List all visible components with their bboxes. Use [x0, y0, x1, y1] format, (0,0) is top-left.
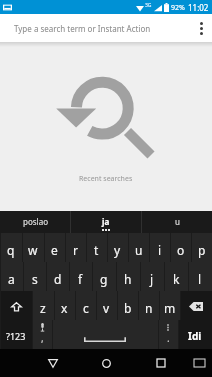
staticText: r: [73, 242, 78, 258]
staticText: n: [145, 300, 153, 316]
staticText: s: [32, 271, 38, 287]
staticText: a: [8, 271, 15, 287]
button[interactable]: k: [164, 262, 188, 291]
button[interactable]: Recent apps: [144, 349, 178, 377]
staticText: l: [198, 271, 202, 287]
staticText: t: [94, 242, 99, 258]
button[interactable]: ja: [71, 211, 141, 233]
staticText: w: [28, 242, 38, 258]
button[interactable]: poslao: [0, 211, 70, 233]
button[interactable]: h: [116, 262, 140, 291]
staticText: Type a search term or Instant Action: [14, 23, 151, 34]
staticText: c: [83, 300, 89, 316]
staticText: q: [7, 242, 15, 258]
button[interactable]: Space: [52, 320, 158, 349]
button[interactable]: e: [44, 233, 65, 262]
button[interactable]: i: [149, 233, 170, 262]
staticText: i: [158, 242, 162, 258]
button[interactable]: Backspace: [180, 291, 212, 320]
button[interactable]: s: [23, 262, 46, 291]
staticText: ?123: [6, 330, 26, 342]
staticText: y: [114, 242, 121, 258]
staticText: Recent searches: [79, 174, 133, 184]
button[interactable]: q: [0, 233, 22, 262]
button[interactable]: b: [117, 291, 138, 320]
button[interactable]: l: [188, 262, 212, 291]
staticText: f: [78, 271, 83, 287]
staticText: b: [124, 300, 132, 316]
button[interactable]: Voice input: [32, 320, 52, 349]
button[interactable]: u: [142, 211, 212, 233]
staticText: d: [54, 271, 62, 287]
staticText: Idi: [188, 329, 202, 343]
button[interactable]: a: [0, 262, 23, 291]
staticText: j: [150, 271, 154, 287]
button[interactable]: Period: [158, 320, 178, 349]
staticText: o: [177, 242, 185, 258]
button[interactable]: w: [22, 233, 44, 262]
button[interactable]: Go: [178, 320, 212, 349]
button[interactable]: j: [140, 262, 164, 291]
button[interactable]: Back: [36, 349, 70, 377]
button[interactable]: v: [96, 291, 117, 320]
staticText: h: [124, 271, 132, 287]
button[interactable]: p: [191, 233, 212, 262]
staticText: k: [173, 271, 180, 287]
staticText: x: [61, 300, 68, 316]
button[interactable]: m: [159, 291, 180, 320]
button[interactable]: n: [138, 291, 159, 320]
button[interactable]: c: [75, 291, 96, 320]
button[interactable]: o: [170, 233, 191, 262]
button[interactable]: r: [65, 233, 86, 262]
button[interactable]: Home: [89, 349, 123, 377]
button[interactable]: d: [46, 262, 69, 291]
button[interactable]: Hide keyboard: [186, 349, 212, 377]
staticText: p: [198, 242, 206, 258]
staticText: 11:02: [188, 2, 209, 13]
button[interactable]: y: [107, 233, 128, 262]
staticText: e: [51, 242, 58, 258]
button[interactable]: g: [92, 262, 116, 291]
staticText: v: [103, 300, 110, 316]
staticText: poslao: [23, 216, 48, 227]
staticText: ja: [102, 216, 110, 227]
staticText: m: [164, 300, 176, 316]
staticText: .: [167, 331, 170, 345]
staticText: u: [135, 242, 143, 258]
staticText: g: [100, 271, 108, 287]
button[interactable]: u: [128, 233, 149, 262]
staticText: z: [40, 300, 46, 316]
button[interactable]: Symbols: [0, 320, 32, 349]
staticText: ,: [41, 331, 44, 345]
button[interactable]: z: [32, 291, 54, 320]
button[interactable]: x: [54, 291, 75, 320]
staticText: 92%: [171, 3, 185, 13]
button[interactable]: More options: [190, 14, 212, 42]
button[interactable]: f: [69, 262, 92, 291]
button[interactable]: t: [86, 233, 107, 262]
button[interactable]: Shift: [0, 291, 32, 320]
staticText: 3G: [145, 2, 152, 9]
staticText: u: [175, 216, 180, 227]
